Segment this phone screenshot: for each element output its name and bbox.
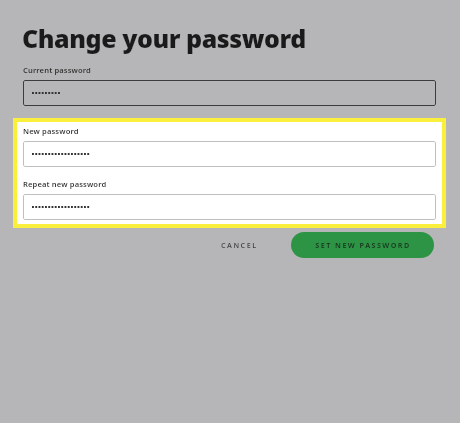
button[interactable] [23, 80, 436, 106]
staticText: New password [23, 126, 79, 136]
staticText: SET NEW PASSWORD [315, 240, 411, 250]
staticText: Repeat new password [23, 179, 107, 189]
button[interactable]: SET NEW PASSWORD [291, 232, 434, 258]
button[interactable]: CANCEL [211, 232, 268, 258]
staticText: Current password [23, 65, 91, 75]
staticText: Change your password [22, 21, 306, 55]
button[interactable] [23, 141, 436, 167]
staticText: CANCEL [221, 240, 258, 250]
button[interactable] [23, 194, 436, 220]
